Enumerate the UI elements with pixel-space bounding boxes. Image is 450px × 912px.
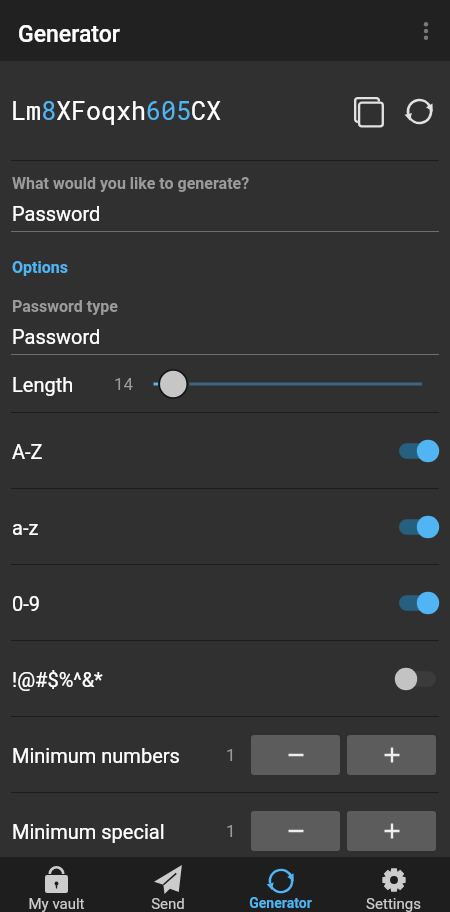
staticText: Password	[12, 325, 101, 348]
staticText: Generator	[249, 895, 312, 911]
staticText: Minimum numbers	[12, 744, 180, 767]
staticText: Generator	[18, 21, 120, 48]
staticText: Length	[12, 373, 74, 396]
staticText: Settings	[366, 895, 421, 912]
staticText: Lm8XFoqxh605CX	[11, 94, 222, 127]
staticText: My vault	[28, 895, 85, 912]
button[interactable]: Generator	[224, 857, 337, 912]
staticText: Options	[12, 258, 68, 277]
staticText: !@#$%^&*	[12, 668, 103, 691]
staticText: a-z	[12, 516, 39, 539]
button[interactable]: Increase	[347, 735, 436, 775]
button[interactable]: Regenerate password	[395, 87, 443, 135]
staticText: 14	[114, 374, 134, 394]
staticText: Password	[12, 202, 101, 225]
button[interactable]: Increase	[347, 811, 436, 851]
button[interactable]: !@#$%^&*	[0, 641, 450, 717]
button[interactable]: More options	[402, 7, 450, 55]
button[interactable]: My vault	[0, 857, 112, 912]
staticText: Minimum special	[12, 820, 165, 843]
staticText: Password type	[12, 297, 118, 316]
staticText: A-Z	[12, 440, 43, 463]
button[interactable]: A-Z	[0, 413, 450, 489]
staticText: 1	[226, 745, 236, 765]
button[interactable]: Decrease	[251, 811, 340, 851]
staticText: 1	[226, 821, 236, 841]
staticText: 0-9	[12, 592, 41, 615]
button[interactable]: a-z	[0, 489, 450, 565]
button[interactable]: Password	[0, 325, 450, 348]
staticText: Send	[151, 895, 185, 912]
button[interactable]: Password length slider	[0, 355, 450, 413]
button[interactable]: 0-9	[0, 565, 450, 641]
button[interactable]: Password	[0, 202, 450, 225]
button[interactable]: Copy password	[344, 87, 392, 135]
staticText: What would you like to generate?	[12, 174, 250, 193]
button[interactable]: Settings	[337, 857, 450, 912]
button[interactable]: Send	[112, 857, 224, 912]
button[interactable]: Decrease	[251, 735, 340, 775]
